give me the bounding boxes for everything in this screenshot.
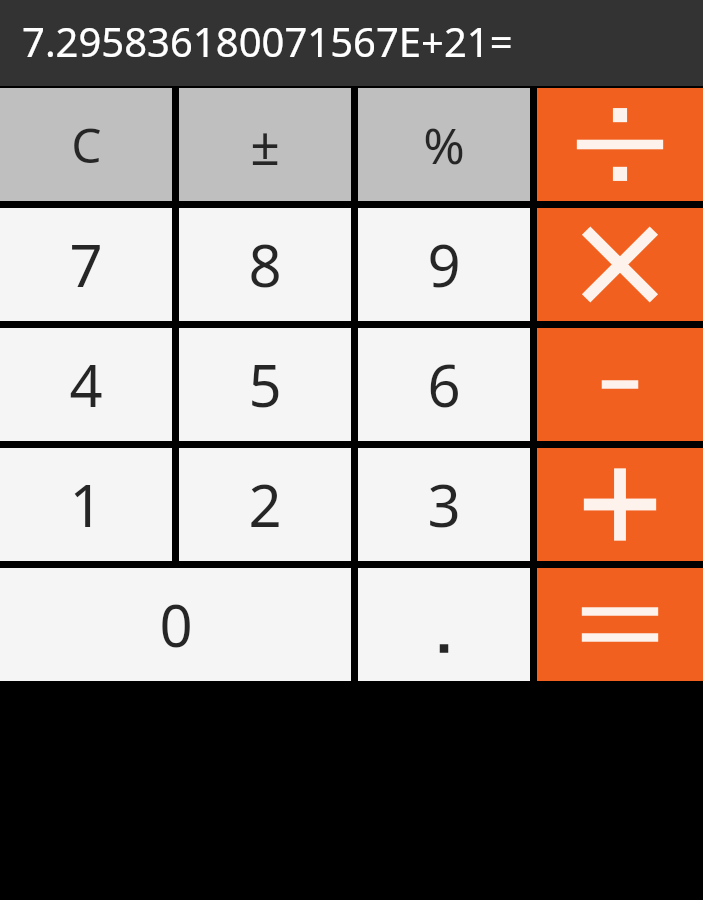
staticText: 0 bbox=[159, 585, 193, 664]
button[interactable]: 8 bbox=[179, 208, 351, 321]
staticText: 7 bbox=[69, 225, 103, 304]
button[interactable]: 7 bbox=[0, 208, 172, 321]
button[interactable]: Multiply bbox=[537, 208, 703, 321]
button[interactable]: 5 bbox=[179, 328, 351, 441]
button[interactable]: % bbox=[358, 88, 530, 201]
button[interactable]: 1 bbox=[0, 448, 172, 561]
button[interactable]: 0 bbox=[0, 568, 351, 681]
button[interactable]: C bbox=[0, 88, 172, 201]
staticText: % bbox=[423, 111, 465, 179]
button[interactable]: Decimal point bbox=[358, 568, 530, 681]
button[interactable]: 6 bbox=[358, 328, 530, 441]
staticText: C bbox=[71, 112, 102, 177]
button[interactable]: 2 bbox=[179, 448, 351, 561]
button[interactable]: Divide bbox=[537, 88, 703, 201]
button[interactable]: 9 bbox=[358, 208, 530, 321]
staticText: 2 bbox=[248, 465, 282, 544]
staticText: 4 bbox=[69, 345, 103, 424]
button[interactable]: Minus bbox=[537, 328, 703, 441]
staticText: 9 bbox=[427, 225, 461, 304]
button[interactable]: 4 bbox=[0, 328, 172, 441]
staticText: 1 bbox=[69, 465, 103, 544]
button[interactable]: 3 bbox=[358, 448, 530, 561]
button[interactable]: ± bbox=[179, 88, 351, 201]
staticText: 3 bbox=[427, 465, 461, 544]
staticText: 5 bbox=[248, 345, 282, 424]
button[interactable]: Plus bbox=[537, 448, 703, 561]
staticText: ± bbox=[250, 109, 280, 180]
staticText: 8 bbox=[248, 225, 282, 304]
staticText: 6 bbox=[427, 345, 461, 424]
staticText: 7.295836180071567E+21= bbox=[22, 14, 513, 68]
button[interactable]: Equals bbox=[537, 568, 703, 681]
